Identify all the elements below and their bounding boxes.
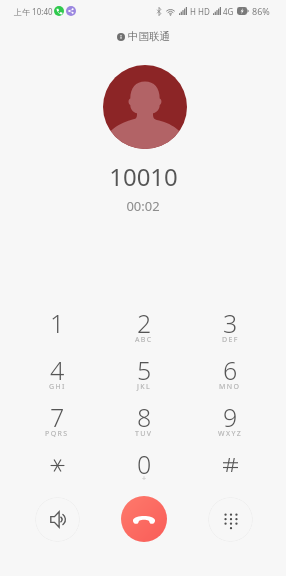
staticText: 86%	[252, 5, 270, 17]
button[interactable]: End call	[121, 496, 167, 542]
button[interactable]: 9	[201, 400, 259, 446]
button[interactable]	[201, 447, 259, 493]
staticText: 00:02	[126, 197, 160, 215]
staticText: 4G	[223, 6, 234, 17]
staticText: 8	[137, 400, 152, 434]
staticText: 中国联通	[128, 30, 170, 43]
button[interactable]: 1	[28, 306, 86, 352]
staticText: 6	[223, 353, 238, 387]
staticText: MNO	[219, 382, 241, 392]
button[interactable]: Speaker	[35, 497, 80, 542]
staticText: 9	[223, 400, 238, 434]
staticText: WXYZ	[218, 429, 243, 439]
button[interactable]: 3	[201, 306, 259, 352]
staticText: DEF	[222, 335, 239, 345]
button[interactable]: 4	[28, 353, 86, 399]
staticText: 4	[50, 353, 65, 387]
button[interactable]	[28, 447, 86, 493]
button[interactable]: Dialpad	[208, 497, 253, 542]
button[interactable]: 6	[201, 353, 259, 399]
button[interactable]: 5	[115, 353, 173, 399]
staticText: 7	[50, 400, 65, 434]
button[interactable]: 0	[115, 447, 173, 493]
staticText: GHI	[49, 382, 66, 392]
staticText: PQRS	[45, 429, 69, 439]
staticText: 上午 10:40	[14, 6, 53, 17]
staticText: 3	[223, 306, 238, 340]
button[interactable]: 8	[115, 400, 173, 446]
staticText: TUV	[135, 429, 153, 439]
staticText: 0	[137, 447, 152, 481]
staticText: HD	[198, 6, 210, 17]
staticText: ABC	[135, 335, 153, 345]
staticText: 2	[137, 306, 152, 340]
staticText: +	[142, 474, 147, 484]
staticText: 5	[137, 353, 152, 387]
staticText: 1	[50, 306, 65, 340]
button[interactable]: 7	[28, 400, 86, 446]
staticText: JKL	[137, 382, 152, 392]
button[interactable]: 2	[115, 306, 173, 352]
staticText: 10010	[109, 160, 178, 193]
staticText: H	[190, 6, 196, 17]
